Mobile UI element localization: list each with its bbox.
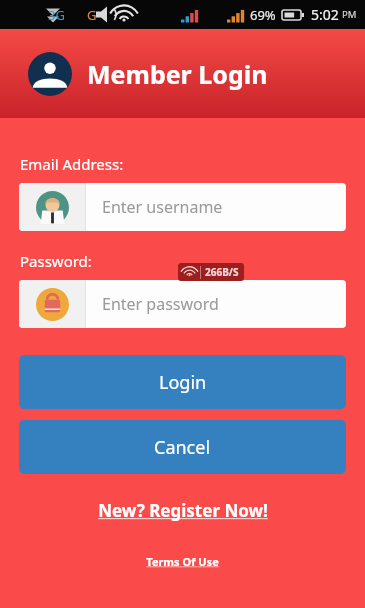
staticText: 5:02 [311,5,339,24]
staticText: Cancel [154,435,211,460]
staticText: Email Address: [20,154,124,174]
staticText: Password: [20,251,92,271]
staticText: Enter password [102,293,219,315]
button[interactable]: Cancel [19,420,346,474]
staticText: New? Register Now! [98,499,268,522]
staticText: PM [342,8,357,21]
staticText: Login [159,370,207,395]
button[interactable]: Enter password [19,280,346,328]
button[interactable]: New? Register Now! [0,495,365,526]
staticText: 266B/S [205,265,239,279]
button[interactable]: Enter username [19,183,346,231]
staticText: 3G [48,6,65,24]
button[interactable]: Terms Of Use [0,550,365,573]
staticText: G [87,6,97,24]
staticText: Member Login [87,57,268,91]
button[interactable]: Login [19,355,346,409]
staticText: Enter username [102,196,223,218]
staticText: 69% [250,6,276,24]
staticText: Terms Of Use [146,554,219,569]
